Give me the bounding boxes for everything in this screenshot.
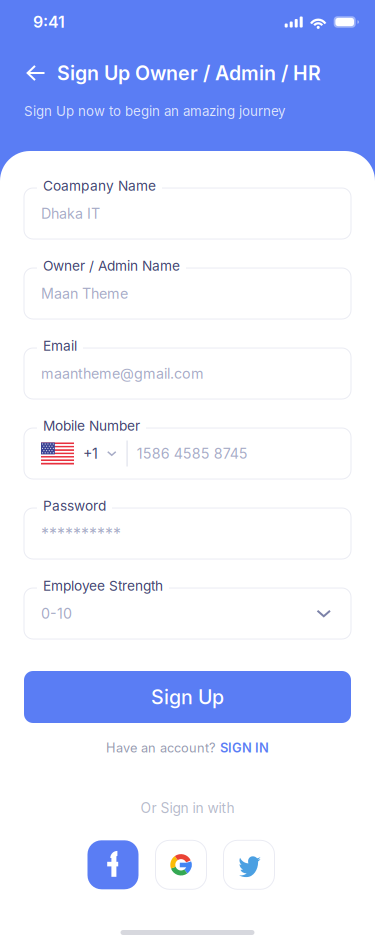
staticText: Mobile Number [43, 417, 140, 434]
staticText: Email [43, 337, 77, 354]
staticText: +1 [83, 445, 98, 462]
staticText: Have an account? [106, 740, 216, 756]
staticText: SIGN IN [220, 740, 269, 756]
staticText: 0-10 [41, 605, 72, 622]
button[interactable]: Sign in with Facebook [87, 840, 138, 889]
staticText: Coampany Name [43, 177, 156, 194]
staticText: Maan Theme [41, 285, 128, 302]
staticText: Owner / Admin Name [43, 257, 180, 274]
staticText: Password [43, 497, 106, 514]
staticText: 1586 4585 8745 [137, 445, 248, 462]
button[interactable]: Back [19, 58, 53, 88]
staticText: 9:41 [33, 12, 65, 32]
staticText: Employee Strength [43, 577, 163, 594]
button[interactable]: Sign Up [24, 671, 351, 723]
button[interactable]: Sign in with Twitter [223, 840, 274, 889]
staticText: Sign Up [151, 685, 224, 709]
button[interactable]: SIGN IN [220, 740, 269, 756]
staticText: maantheme@gmail.com [41, 365, 204, 382]
button[interactable]: Sign in with Google [155, 840, 206, 889]
staticText: Sign Up Owner / Admin / HR [57, 61, 321, 85]
staticText: Or Sign in with [140, 800, 234, 816]
staticText: ********** [41, 524, 121, 543]
staticText: Sign Up now to begin an amazing journey [24, 103, 285, 119]
staticText: Dhaka IT [41, 205, 100, 222]
